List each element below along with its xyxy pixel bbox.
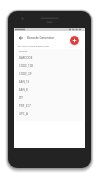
staticText: ITF bbox=[19, 96, 24, 100]
staticText: Barcode Generator bbox=[27, 36, 55, 40]
staticText: Formato bbox=[19, 50, 28, 53]
button[interactable]: BARCODE bbox=[16, 54, 82, 62]
button[interactable]: UPC_A bbox=[16, 110, 82, 118]
button[interactable]: CODE_128 bbox=[16, 62, 82, 70]
button[interactable]: ITF bbox=[16, 94, 82, 102]
staticText: Aqui voce pode digitar algo bbox=[17, 44, 50, 47]
button[interactable]: EAN_8 bbox=[16, 86, 82, 94]
button[interactable]: Add barcode bbox=[70, 36, 79, 45]
button[interactable]: EAN_13 bbox=[16, 78, 82, 86]
staticText: CODE_39 bbox=[19, 72, 32, 76]
staticText: PDF_417 bbox=[19, 104, 31, 108]
button[interactable]: CODE_39 bbox=[16, 70, 82, 78]
staticText: UPC_A bbox=[19, 112, 28, 116]
button[interactable]: Back bbox=[16, 33, 25, 42]
button[interactable]: PDF_417 bbox=[16, 102, 82, 110]
staticText: EAN_13 bbox=[19, 80, 30, 84]
staticText: CODE_128 bbox=[19, 64, 33, 68]
staticText: BARCODE bbox=[19, 56, 33, 60]
staticText: EAN_8 bbox=[19, 88, 28, 92]
